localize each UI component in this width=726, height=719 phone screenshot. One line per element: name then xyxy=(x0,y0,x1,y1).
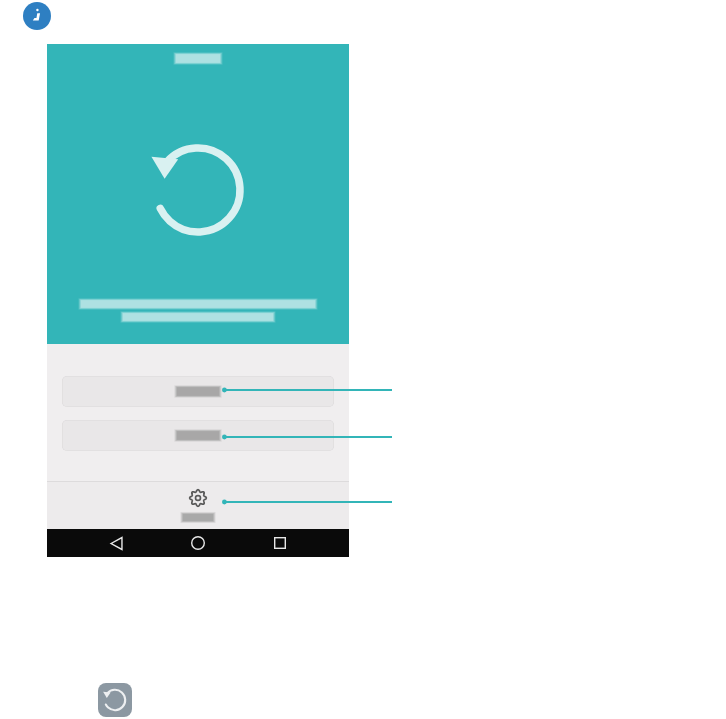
button[interactable]: Back xyxy=(103,530,129,556)
button[interactable]: Information xyxy=(23,2,51,30)
button[interactable] xyxy=(62,376,334,407)
button[interactable]: Recents xyxy=(267,530,293,556)
button[interactable] xyxy=(62,420,334,451)
button[interactable]: Settings xyxy=(47,481,349,529)
button[interactable]: Backup icon xyxy=(98,683,132,717)
button[interactable]: Home xyxy=(185,530,211,556)
